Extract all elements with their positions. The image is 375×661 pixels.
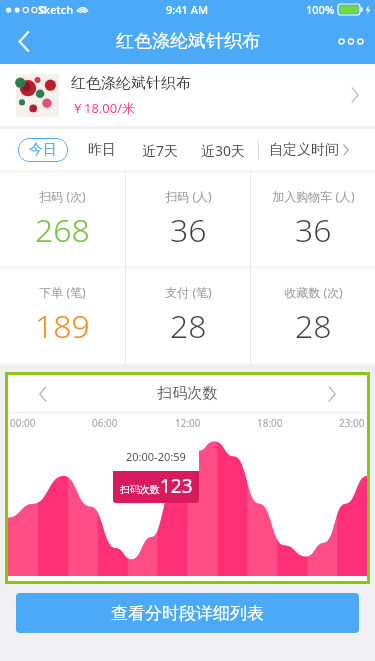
button[interactable]: 自定义时间 [269,135,349,165]
staticText: 扫码 (次) [39,188,86,204]
button[interactable]: Back [0,18,48,64]
staticText: 自定义时间 [269,141,339,159]
button[interactable]: 红色涤纶斌针织布 [0,64,375,126]
staticText: 36 [170,208,207,252]
staticText: 扫码次数 [120,483,160,496]
staticText: 18:00 [257,416,283,430]
button[interactable]: 加入购物车 (人) [251,172,375,267]
staticText: 06:00 [92,416,118,430]
staticText: 100% [306,2,335,17]
staticText: 20:00-20:59 [126,449,186,464]
button[interactable]: 下单 (笔) [0,268,125,364]
staticText: 下单 (笔) [39,284,86,300]
staticText: 28 [170,304,207,348]
button[interactable]: 支付 (笔) [126,268,250,364]
staticText: 支付 (笔) [165,284,212,300]
staticText: 189 [35,304,90,348]
button[interactable]: More options [327,18,375,64]
staticText: Sketch [38,2,74,17]
staticText: 红色涤纶斌针织布 [116,30,260,53]
button[interactable]: 扫码 (人) [126,172,250,267]
button[interactable]: Next [297,375,367,412]
staticText: 00:00 [10,416,36,430]
staticText: 9:41 AM [166,2,209,17]
staticText: 12:00 [175,416,201,430]
button[interactable]: 近30天 [201,135,246,166]
button[interactable]: 收藏数 (次) [251,268,375,364]
button[interactable]: 查看分时段详细列表 [16,593,359,633]
staticText: 扫码 (人) [165,188,212,204]
staticText: 268 [35,208,90,252]
staticText: 收藏数 (次) [284,284,343,300]
staticText: 加入购物车 (人) [272,188,355,204]
button[interactable]: 昨日 [88,135,116,165]
staticText: 今日 [29,141,57,159]
button[interactable]: 扫码 (次) [0,172,125,267]
staticText: 扫码次数 [78,384,297,403]
staticText: ￥18.00/米 [71,99,136,117]
staticText: 36 [295,208,332,252]
button[interactable]: 今日 [18,138,68,162]
button[interactable]: Previous [8,375,78,412]
staticText: 23:00 [339,416,365,430]
staticText: 查看分时段详细列表 [111,603,264,624]
staticText: 红色涤纶斌针织布 [71,74,191,93]
staticText: 123 [160,473,193,499]
button[interactable]: 近7天 [142,135,179,166]
staticText: 28 [295,304,332,348]
